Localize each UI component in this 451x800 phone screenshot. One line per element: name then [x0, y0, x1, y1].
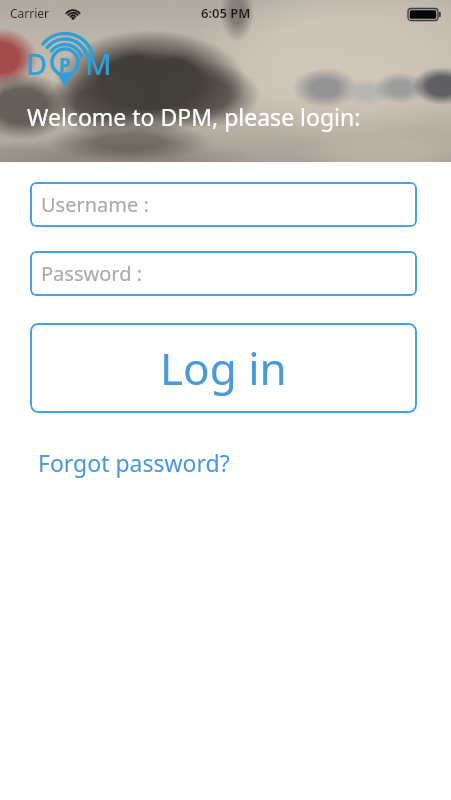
- staticText: Password :: [41, 260, 143, 287]
- staticText: Forgot password?: [38, 447, 230, 478]
- button[interactable]: Forgot password?: [38, 447, 230, 478]
- staticText: D: [26, 44, 48, 83]
- staticText: M: [85, 44, 112, 83]
- button[interactable]: Log in: [30, 323, 417, 413]
- button[interactable]: Username :: [30, 182, 417, 227]
- staticText: Welcome to DPM, please login:: [27, 101, 361, 132]
- staticText: Username :: [41, 191, 149, 218]
- staticText: 6:05 PM: [201, 4, 251, 22]
- button[interactable]: Password :: [30, 251, 417, 296]
- staticText: Log in: [160, 338, 287, 398]
- staticText: Carrier: [10, 5, 50, 21]
- staticText: P: [59, 52, 71, 78]
